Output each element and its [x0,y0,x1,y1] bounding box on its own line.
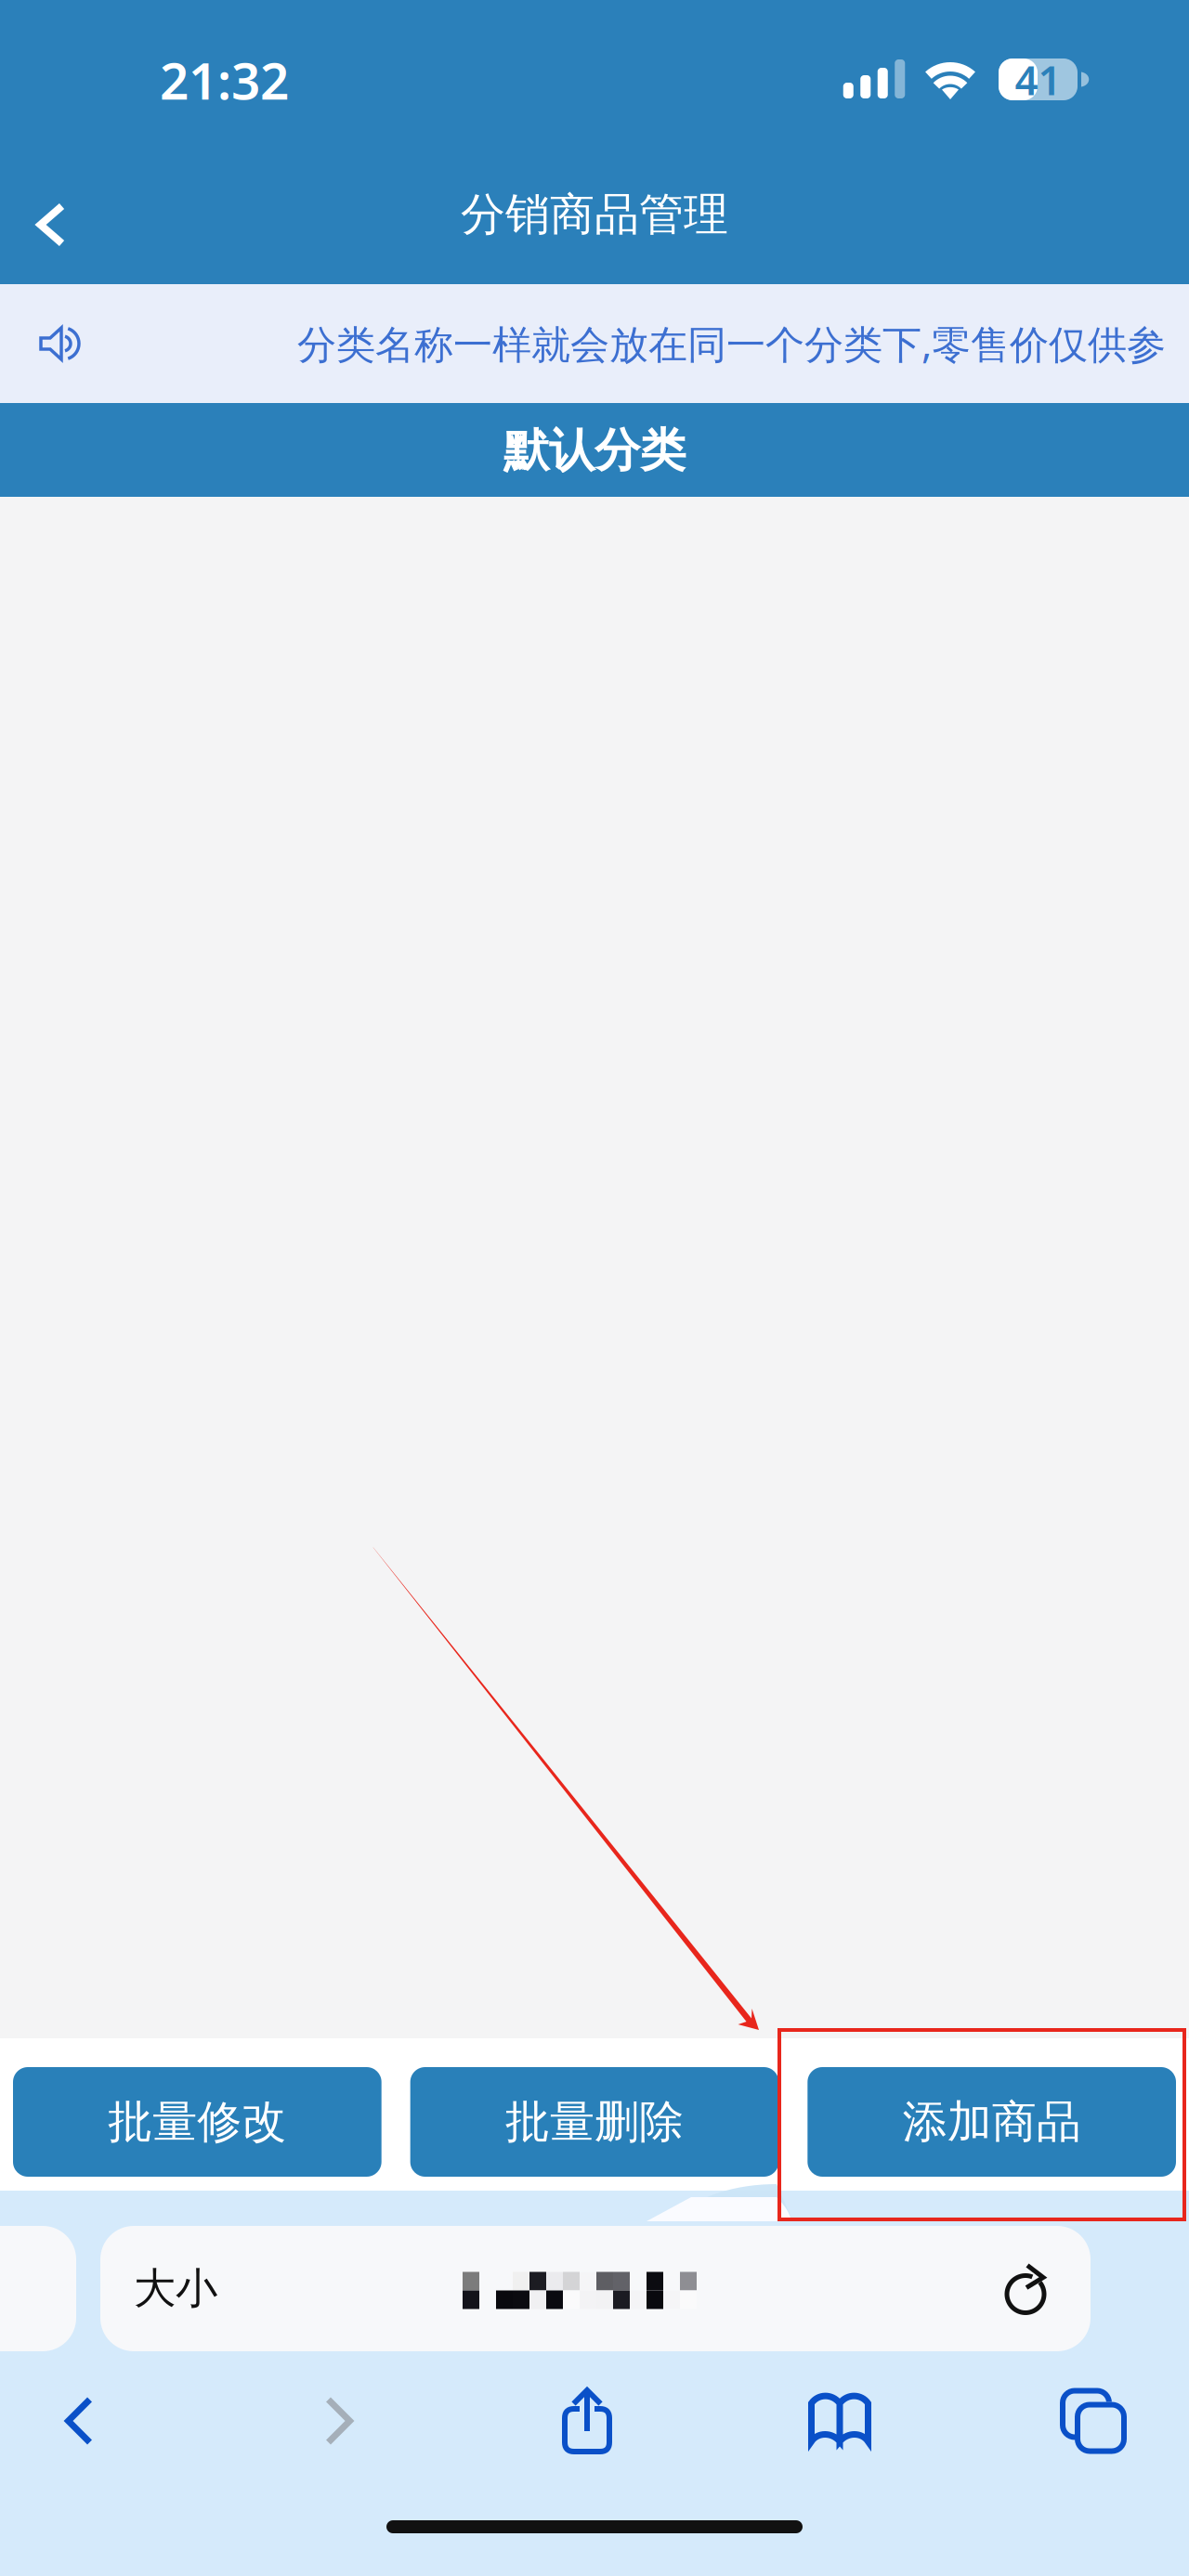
staticText: 批量删除 [505,2095,684,2149]
button[interactable]: Share [517,2370,657,2472]
button[interactable]: 添加商品 [807,2067,1176,2177]
staticText: 21:32 [160,46,289,114]
button[interactable]: 大小 [100,2226,1091,2351]
staticText: 41 [1015,52,1061,107]
button[interactable]: 批量修改 [13,2067,382,2177]
staticText: 分类名称一样就会放在同一个分类下,零售价仅供参 [297,317,1166,370]
button[interactable]: Back [9,2370,149,2472]
staticText: 批量修改 [108,2095,286,2149]
staticText: 默认分类 [503,422,686,479]
button[interactable]: Bookmarks [770,2370,909,2472]
button[interactable]: Tabs [1024,2370,1163,2472]
button[interactable]: Forward [269,2370,409,2472]
button[interactable]: 批量删除 [410,2067,779,2177]
button[interactable]: Back [0,174,102,276]
staticText: 大小 [134,2262,217,2315]
staticText: 添加商品 [903,2095,1081,2149]
staticText: 分销商品管理 [461,187,728,242]
